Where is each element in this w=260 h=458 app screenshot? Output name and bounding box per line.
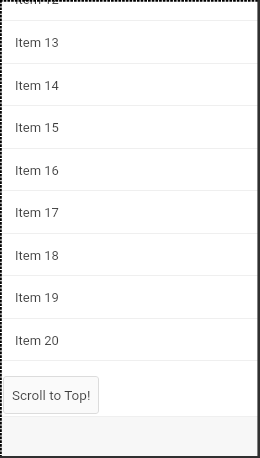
button[interactable]: Item 19 <box>0 276 260 319</box>
button[interactable]: Item 17 <box>0 191 260 234</box>
staticText: Item 20 <box>15 333 59 348</box>
staticText: Scroll to Top! <box>12 387 91 403</box>
staticText: Item 15 <box>15 120 59 135</box>
button[interactable]: Item 16 <box>0 149 260 191</box>
staticText: Item 12 <box>15 0 59 7</box>
staticText: Item 14 <box>15 78 59 93</box>
button[interactable]: Item 12 <box>0 0 260 21</box>
button[interactable]: Item 14 <box>0 64 260 106</box>
button[interactable]: Item 15 <box>0 106 260 149</box>
button[interactable]: Item 20 <box>0 319 260 361</box>
staticText: Item 17 <box>15 205 59 220</box>
staticText: Item 18 <box>15 248 59 263</box>
button[interactable]: Scroll to Top! <box>3 376 99 414</box>
button[interactable]: Item 18 <box>0 234 260 276</box>
staticText: Item 16 <box>15 163 59 178</box>
button[interactable]: Item 13 <box>0 21 260 64</box>
staticText: Item 13 <box>15 35 59 50</box>
staticText: Item 19 <box>15 290 59 305</box>
